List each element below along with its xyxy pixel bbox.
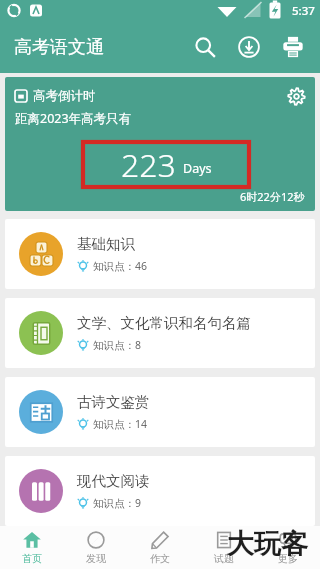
button[interactable]: Settings [282, 82, 310, 110]
staticText: 作文 [150, 552, 170, 565]
staticText: 距离2023年高考只有 [15, 110, 132, 127]
button[interactable]: Print [276, 30, 310, 64]
staticText: 首页 [22, 552, 42, 565]
staticText: 知识点：9 [93, 496, 142, 510]
staticText: 现代文阅读 [77, 472, 150, 490]
staticText: 知识点：14 [93, 417, 148, 431]
staticText: 文学、文化常识和名句名篇 [77, 314, 251, 332]
button[interactable]: 首页 [0, 526, 64, 569]
staticText: 大玩客 [227, 527, 308, 561]
staticText: 知识点：8 [93, 338, 142, 352]
staticText: 试题 [214, 552, 234, 565]
staticText: 高考倒计时 [33, 88, 96, 104]
staticText: 发现 [86, 552, 106, 565]
staticText: 高考语文通 [14, 36, 104, 59]
staticText: 5:37 [292, 3, 315, 19]
staticText: Days [183, 160, 212, 177]
button[interactable]: Download [232, 30, 266, 64]
button[interactable]: 文学、文化常识和名句名篇 [5, 298, 315, 368]
staticText: 6时22分12秒 [240, 189, 305, 204]
button[interactable]: 基础知识 [5, 219, 315, 289]
button[interactable]: 现代文阅读 [5, 456, 315, 526]
button[interactable]: 试题 [192, 526, 256, 569]
button[interactable]: 发现 [64, 526, 128, 569]
button[interactable]: Search [188, 30, 222, 64]
staticText: 古诗文鉴赏 [77, 393, 150, 411]
staticText: 223 [121, 143, 176, 187]
staticText: 基础知识 [77, 235, 135, 253]
staticText: 知识点：46 [93, 259, 148, 273]
button[interactable]: 高考倒计时 [5, 77, 315, 211]
button[interactable]: 古诗文鉴赏 [5, 377, 315, 447]
button[interactable]: 作文 [128, 526, 192, 569]
button[interactable]: 更多 [256, 526, 320, 569]
staticText: 更多 [278, 552, 298, 565]
